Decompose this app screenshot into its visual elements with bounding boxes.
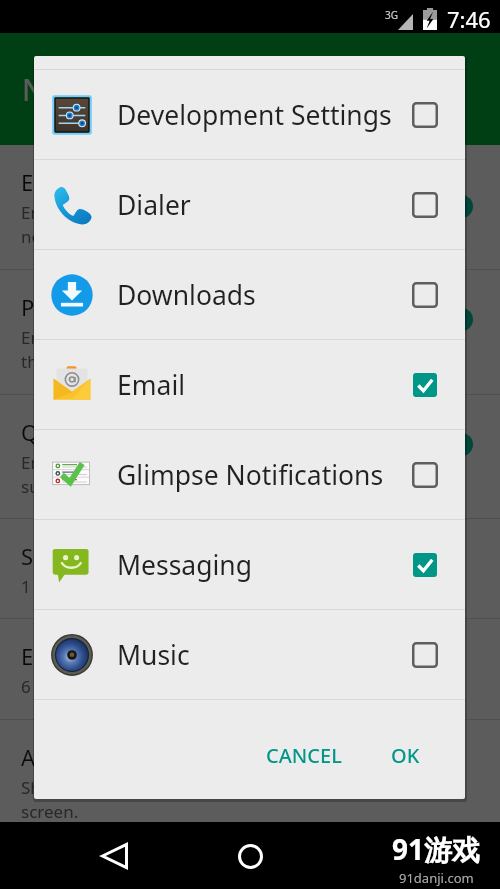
staticText: Edge lighting	[21, 641, 158, 671]
staticText: Show on screen.	[21, 776, 90, 823]
button[interactable]: Downloads	[34, 250, 465, 339]
button[interactable]: Development Settings	[34, 70, 465, 159]
staticText: OK	[391, 742, 420, 769]
staticText: Messaging	[117, 547, 412, 583]
button[interactable]: Quiet hours	[0, 395, 500, 519]
button[interactable]: CANCEL	[252, 730, 356, 781]
button[interactable]: Home	[230, 836, 270, 876]
button[interactable]: Back	[94, 836, 134, 876]
staticText: Sensitivity	[21, 541, 125, 571]
button[interactable]: Messaging	[34, 520, 465, 609]
button[interactable]: OK	[377, 730, 434, 781]
staticText: Pocket mode	[21, 292, 156, 322]
button[interactable]: Glimpse Notifications	[34, 430, 465, 519]
staticText: Music	[117, 637, 412, 673]
staticText: Development Settings	[117, 97, 412, 133]
staticText: 7:46	[447, 4, 491, 30]
button[interactable]: Always on	[0, 720, 500, 845]
button[interactable]: Edge lighting	[0, 619, 500, 720]
staticText: Glimpse Notifications	[117, 457, 412, 493]
staticText: Enable Glimpse	[21, 167, 181, 197]
staticText: Always on	[21, 742, 125, 772]
staticText: CANCEL	[266, 742, 342, 769]
staticText: Enable suppression	[21, 451, 119, 498]
staticText: Enable the pocket mode	[21, 326, 156, 373]
staticText: 1	[21, 575, 31, 598]
staticText: Enable Glimpse notifications	[21, 201, 145, 248]
staticText: Dialer	[117, 187, 412, 223]
staticText: 91danji.com	[399, 869, 474, 887]
button[interactable]: Pocket mode	[0, 270, 500, 395]
button[interactable]: Email	[34, 340, 465, 429]
staticText: Email	[117, 367, 412, 403]
staticText: 3G	[385, 8, 398, 22]
staticText: 91游戏	[392, 830, 481, 868]
staticText: 6	[21, 675, 31, 698]
button[interactable]: Enable Glimpse	[0, 145, 500, 270]
staticText: Downloads	[117, 277, 412, 313]
button[interactable]: Dialer	[34, 160, 465, 249]
staticText: Quiet hours	[21, 417, 144, 447]
button[interactable]: Sensitivity	[0, 519, 500, 619]
button[interactable]: Music	[34, 610, 465, 699]
staticText: Notifications	[22, 69, 201, 110]
